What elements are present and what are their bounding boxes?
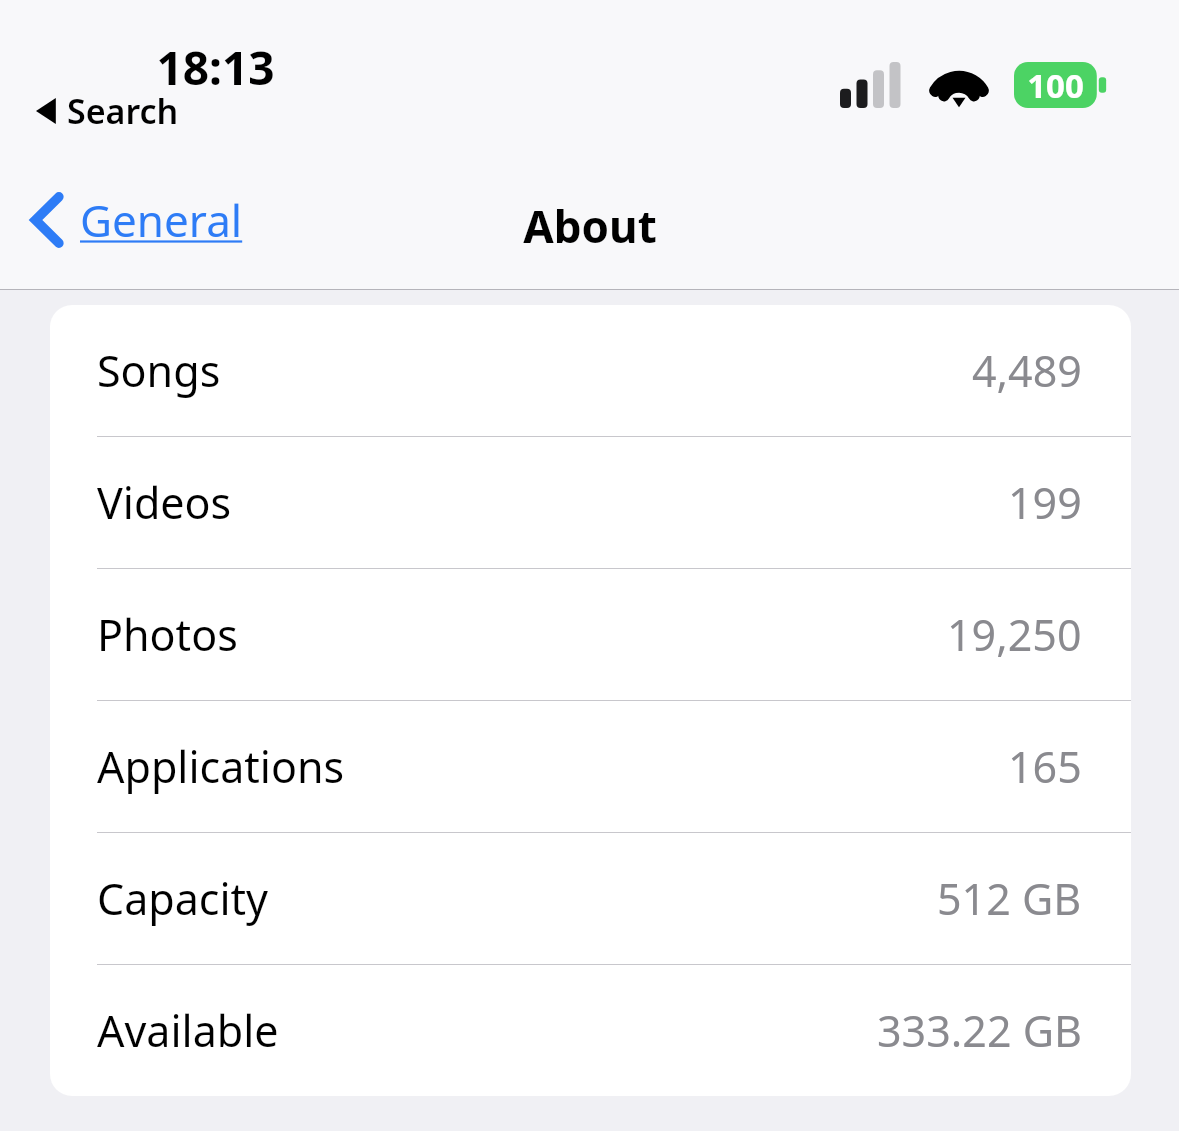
button[interactable]: Applications	[50, 701, 1131, 832]
staticText: 19,250	[947, 605, 1082, 664]
staticText: Songs	[97, 341, 221, 400]
staticText: 199	[1008, 473, 1082, 532]
button[interactable]: Search	[36, 88, 179, 134]
staticText: General	[80, 190, 243, 250]
staticText: Search	[67, 88, 179, 134]
staticText: About	[523, 196, 657, 256]
staticText: 512 GB	[937, 869, 1082, 928]
staticText: Videos	[97, 473, 232, 532]
staticText: 100	[1027, 63, 1084, 108]
staticText: 333.22 GB	[877, 1001, 1082, 1060]
button[interactable]: Photos	[50, 569, 1131, 700]
button[interactable]: Capacity	[50, 833, 1131, 964]
staticText: Photos	[97, 605, 238, 664]
staticText: Capacity	[97, 869, 269, 928]
button[interactable]: General	[24, 186, 249, 254]
staticText: Available	[97, 1001, 279, 1060]
staticText: 4,489	[972, 341, 1082, 400]
button[interactable]: Songs	[50, 305, 1131, 436]
staticText: 18:13	[156, 36, 275, 99]
button[interactable]: Available	[50, 965, 1131, 1096]
staticText: 165	[1008, 737, 1082, 796]
button[interactable]: Videos	[50, 437, 1131, 568]
staticText: Applications	[97, 737, 345, 796]
